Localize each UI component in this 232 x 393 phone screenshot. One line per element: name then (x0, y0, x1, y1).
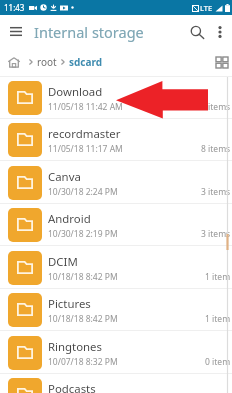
staticText: LTE (200, 3, 213, 13)
staticText: 10/30/18 2:19 PM (48, 228, 118, 240)
staticText: Canva (48, 169, 81, 185)
button[interactable]: Download (0, 77, 232, 119)
button[interactable]: Pictures (0, 289, 232, 331)
staticText: 10/07/18 8:32 PM (48, 356, 118, 368)
staticText: 10/18/18 8:42 PM (48, 271, 118, 283)
staticText: 0 item (205, 356, 231, 368)
staticText: 3 items (201, 186, 231, 198)
button[interactable]: Canva (0, 162, 232, 204)
staticText: Download (48, 84, 103, 100)
staticText: Podcasts (48, 381, 96, 393)
staticText: 3 items (201, 228, 231, 240)
button[interactable]: DCIM (0, 247, 232, 289)
staticText: DCIM (48, 254, 78, 270)
staticText: Pictures (48, 296, 91, 312)
staticText: recordmaster (48, 126, 121, 142)
button[interactable]: Grid view (212, 49, 232, 75)
button[interactable]: Ringtones (0, 332, 232, 374)
staticText: 8 items (201, 143, 231, 155)
staticText: 11:43 (4, 2, 25, 13)
button[interactable]: Home (0, 49, 27, 76)
staticText: 11/05/18 11:42 AM (48, 101, 123, 113)
staticText: 10/18/18 8:42 PM (48, 313, 118, 325)
button[interactable]: recordmaster (0, 119, 232, 161)
button[interactable]: root (35, 55, 59, 69)
staticText: Ringtones (48, 339, 102, 355)
staticText: Internal storage (34, 22, 144, 42)
button[interactable]: Navigation menu (0, 16, 31, 47)
staticText: 10/30/18 2:24 PM (48, 186, 118, 198)
button[interactable]: Podcasts (0, 374, 232, 393)
staticText: 4 items (201, 101, 231, 113)
staticText: 11/05/18 11:17 AM (48, 143, 123, 155)
button[interactable]: More options (211, 20, 229, 44)
staticText: 1 item (205, 313, 231, 325)
button[interactable]: Search (183, 18, 211, 46)
staticText: Android (48, 211, 91, 227)
staticText: 1 item (205, 271, 231, 283)
button[interactable]: Android (0, 204, 232, 246)
button[interactable]: sdcard (67, 55, 105, 69)
